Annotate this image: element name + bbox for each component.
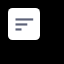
button[interactable] [0,0,64,64]
